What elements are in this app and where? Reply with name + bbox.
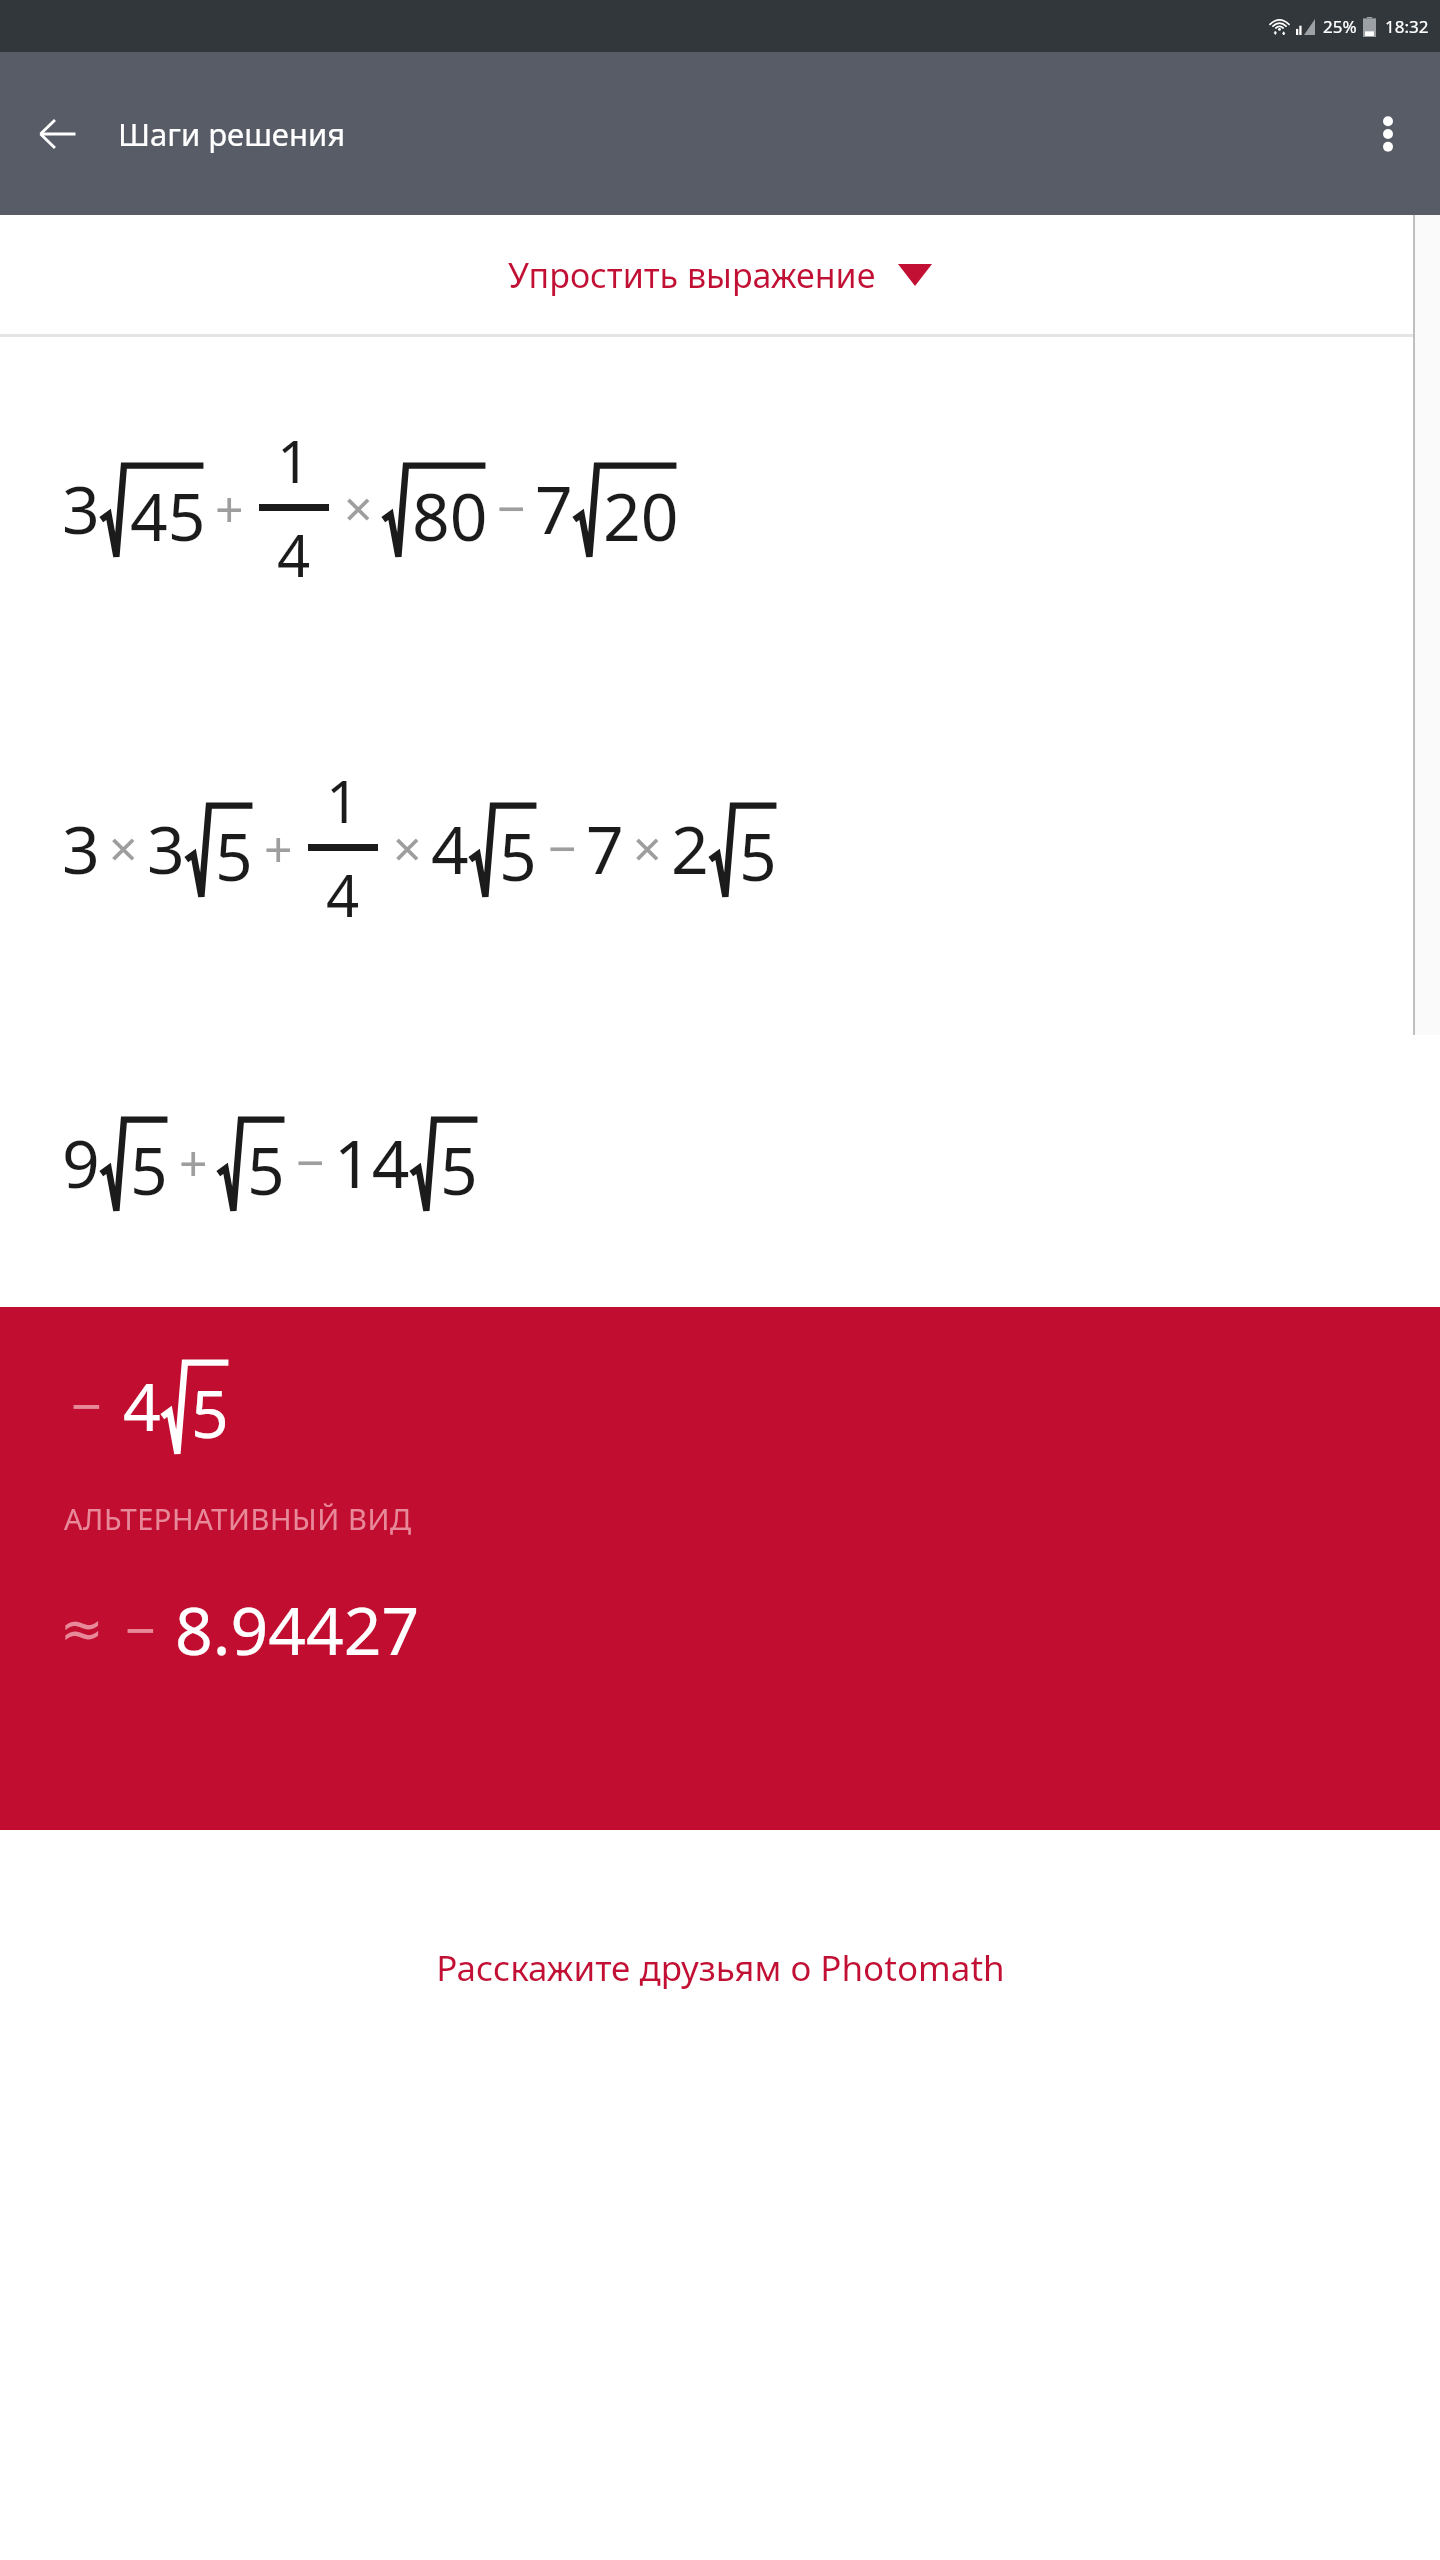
button[interactable]: Расскажите друзьям о Photomath	[0, 1830, 1440, 2105]
staticText: 3	[62, 803, 100, 893]
staticText: 5	[499, 810, 537, 900]
staticText: Упростить выражение	[508, 252, 876, 298]
staticText: Шаги решения	[118, 113, 346, 155]
button[interactable]: More options	[1352, 98, 1424, 170]
staticText: 45	[130, 470, 206, 560]
staticText: 1	[326, 761, 360, 840]
staticText: −	[497, 474, 526, 542]
staticText: 8.94427	[175, 1584, 420, 1674]
staticText: −	[548, 814, 577, 882]
staticText: 7	[586, 803, 624, 893]
button[interactable]: Back	[22, 98, 94, 170]
staticText: ×	[109, 814, 138, 882]
staticText: ×	[393, 814, 422, 882]
staticText: 18:32	[1385, 15, 1429, 38]
staticText: 80	[412, 470, 488, 560]
staticText: 4	[277, 515, 311, 594]
staticText: 1	[277, 421, 311, 500]
staticText: 2	[671, 803, 709, 893]
staticText: 5	[191, 1367, 229, 1457]
staticText: 4	[326, 855, 360, 934]
staticText: 5	[440, 1124, 478, 1214]
staticText: 25%	[1323, 15, 1357, 38]
staticText: 7	[535, 463, 573, 553]
staticText: ≈	[60, 1599, 104, 1660]
staticText: 3	[62, 463, 100, 553]
staticText: ×	[633, 814, 662, 882]
staticText: 3	[147, 803, 185, 893]
staticText: 20	[603, 470, 679, 560]
staticText: 5	[130, 1124, 168, 1214]
staticText: 14	[334, 1117, 410, 1207]
staticText: +	[179, 1128, 208, 1196]
staticText: Расскажите друзьям о Photomath	[436, 1944, 1005, 1992]
staticText: 5	[739, 810, 777, 900]
staticText: АЛЬТЕРНАТИВНЫЙ ВИД	[64, 1499, 412, 1538]
staticText: 5	[215, 810, 253, 900]
staticText: 5	[247, 1124, 285, 1214]
staticText: 4	[123, 1360, 161, 1450]
staticText: −	[296, 1128, 325, 1196]
staticText: 9	[62, 1117, 100, 1207]
staticText: 4	[431, 803, 469, 893]
staticText: −	[125, 1592, 156, 1666]
button[interactable]: Упростить выражение	[0, 215, 1440, 334]
staticText: +	[264, 814, 293, 882]
staticText: ×	[344, 474, 373, 542]
button[interactable]: −	[0, 1307, 1440, 1830]
staticText: −	[71, 1368, 102, 1442]
staticText: +	[215, 474, 244, 542]
